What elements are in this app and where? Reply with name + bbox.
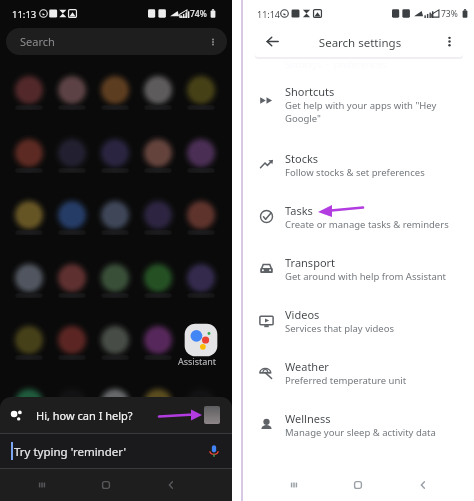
- staticText: Search: [20, 34, 55, 49]
- button[interactable]: App: [10, 321, 48, 359]
- button[interactable]: Stocks: [243, 149, 474, 183]
- staticText: 73%: [441, 8, 458, 20]
- staticText: Hi, how can I help?: [36, 408, 133, 423]
- staticText: Wellness: [285, 411, 331, 426]
- button[interactable]: App: [96, 71, 134, 109]
- button[interactable]: App: [53, 384, 91, 422]
- button[interactable]: App: [53, 321, 91, 359]
- staticText: 11:14: [257, 8, 281, 20]
- button[interactable]: Recents: [31, 469, 53, 501]
- button[interactable]: App: [139, 196, 177, 234]
- staticText: Services that play videos: [285, 322, 394, 335]
- button[interactable]: App: [10, 71, 48, 109]
- button[interactable]: App: [96, 196, 134, 234]
- staticText: Transport: [285, 255, 336, 270]
- button[interactable]: App: [96, 259, 134, 297]
- button[interactable]: App: [10, 259, 48, 297]
- button[interactable]: Videos: [243, 305, 474, 339]
- button[interactable]: App: [10, 134, 48, 172]
- button[interactable]: More options: [443, 35, 456, 48]
- button[interactable]: App: [53, 196, 91, 234]
- button[interactable]: App: [96, 321, 134, 359]
- button[interactable]: Home: [95, 469, 117, 501]
- button[interactable]: App: [182, 384, 220, 422]
- button[interactable]: App: [53, 134, 91, 172]
- button[interactable]: App: [182, 259, 220, 297]
- button[interactable]: App: [182, 321, 220, 359]
- staticText: Manage your sleep & activity data: [285, 426, 436, 439]
- staticText: Get help with your apps with "Hey: [285, 99, 437, 112]
- staticText: Get around with help from Assistant: [285, 270, 447, 283]
- button[interactable]: App: [182, 71, 220, 109]
- button[interactable]: Back: [412, 469, 434, 501]
- button[interactable]: Voice input: [205, 442, 223, 460]
- staticText: Preferred temperature unit: [285, 374, 407, 387]
- button[interactable]: App: [139, 259, 177, 297]
- staticText: Stocks: [285, 151, 319, 166]
- button[interactable]: Recents: [283, 469, 305, 501]
- staticText: Search settings: [299, 35, 421, 51]
- button[interactable]: Wellness: [243, 409, 474, 443]
- staticText: Weather: [285, 359, 329, 374]
- button[interactable]: Search: [6, 28, 227, 55]
- staticText: Videos: [285, 307, 320, 322]
- staticText: Settings · preferences: [285, 58, 387, 71]
- button[interactable]: App: [10, 384, 48, 422]
- button[interactable]: Profile: [204, 406, 220, 424]
- button[interactable]: App: [139, 384, 177, 422]
- button[interactable]: App: [182, 134, 220, 172]
- button[interactable]: App: [139, 71, 177, 109]
- button[interactable]: App: [182, 196, 220, 234]
- button[interactable]: App: [96, 134, 134, 172]
- staticText: Try typing 'reminder': [14, 444, 127, 460]
- button[interactable]: Hi, how can I help?: [0, 397, 232, 433]
- button[interactable]: App: [139, 134, 177, 172]
- button[interactable]: App: [53, 71, 91, 109]
- button[interactable]: Shortcuts: [243, 82, 474, 126]
- staticText: 11:13: [12, 8, 37, 21]
- staticText: 74%: [190, 8, 207, 20]
- staticText: Assistant: [178, 355, 217, 367]
- button[interactable]: Home: [347, 469, 369, 501]
- button[interactable]: Back: [160, 469, 182, 501]
- staticText: Tasks: [285, 203, 313, 218]
- button[interactable]: App: [53, 259, 91, 297]
- button[interactable]: Transport: [243, 253, 474, 287]
- staticText: Google": [285, 112, 321, 125]
- staticText: Shortcuts: [285, 84, 335, 99]
- button[interactable]: Tasks: [243, 201, 474, 235]
- button[interactable]: Back: [263, 32, 282, 51]
- staticText: Follow stocks & set preferences: [285, 166, 425, 179]
- staticText: Create or manage tasks & reminders: [285, 218, 449, 231]
- button[interactable]: Weather: [243, 357, 474, 391]
- button[interactable]: App: [10, 196, 48, 234]
- button[interactable]: App: [139, 321, 177, 359]
- button[interactable]: App: [96, 384, 134, 422]
